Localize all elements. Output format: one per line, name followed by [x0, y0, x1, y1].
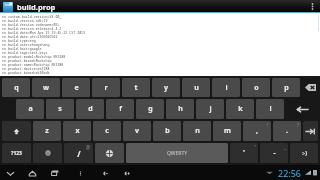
staticText: ro.product.name=Rockchip RK3188: [2, 62, 64, 66]
staticText: QWERTY: [167, 150, 188, 157]
staticText: build.prop: [17, 2, 56, 12]
button[interactable]: Enter: [286, 99, 318, 119]
staticText: o: [254, 83, 259, 93]
staticText: j: [209, 104, 212, 114]
button[interactable]: z: [33, 121, 61, 141]
button[interactable]: Delete: [302, 78, 318, 97]
staticText: z: [45, 126, 49, 136]
button[interactable]: Back: [4, 167, 16, 179]
button[interactable]: QWERTY: [126, 143, 228, 163]
staticText: ro.product.board=rk30sdk: [2, 70, 50, 74]
button[interactable]: :-): [290, 143, 318, 163]
button[interactable]: Home: [26, 167, 38, 179]
button[interactable]: k: [226, 99, 254, 119]
button[interactable]: l: [256, 99, 284, 119]
button[interactable]: d: [76, 99, 104, 119]
button[interactable]: g: [136, 99, 164, 119]
staticText: _: [284, 144, 286, 150]
staticText: :-): [302, 150, 307, 157]
button[interactable]: -: [260, 143, 288, 163]
button[interactable]: More options: [307, 0, 317, 13]
button[interactable]: Tab: [303, 121, 318, 141]
staticText: ,: [256, 126, 258, 136]
button[interactable]: m: [213, 121, 241, 141]
button[interactable]: x: [63, 121, 91, 141]
button[interactable]: Shift: [2, 121, 31, 141]
staticText: h: [178, 104, 183, 114]
staticText: ro.build.tags=test-keys: [2, 50, 48, 54]
button[interactable]: ,: [243, 121, 271, 141]
staticText: ": [254, 144, 256, 150]
button[interactable]: ': [230, 143, 258, 163]
staticText: ro.build.date=Mon Apr 15 19:45:22 CST 20…: [2, 30, 86, 34]
staticText: i: [225, 83, 228, 93]
button[interactable]: y: [152, 78, 180, 97]
button[interactable]: c: [93, 121, 121, 141]
staticText: y: [164, 83, 168, 93]
staticText: e: [74, 83, 79, 93]
staticText: ro.product.brand=Rockchip: [2, 58, 52, 62]
button[interactable]: n: [183, 121, 211, 141]
button[interactable]: f: [106, 99, 134, 119]
staticText: ?: [297, 122, 299, 128]
button[interactable]: Menu: [74, 167, 86, 179]
staticText: ro.build.version.sdk=19: [2, 18, 48, 22]
staticText: ro.build.host=google: [2, 46, 42, 50]
staticText: g: [148, 104, 153, 114]
button[interactable]: Recents: [48, 167, 60, 179]
button[interactable]: p: [272, 78, 300, 97]
staticText: /: [77, 148, 81, 159]
button[interactable]: u: [182, 78, 210, 97]
button[interactable]: /: [64, 143, 93, 163]
button[interactable]: ?123: [2, 143, 31, 163]
button[interactable]: v: [123, 121, 151, 141]
staticText: l: [269, 104, 272, 114]
button[interactable]: t: [122, 78, 150, 97]
staticText: !: [267, 122, 269, 128]
staticText: c: [105, 126, 109, 136]
staticText: ro.build.type=eng: [2, 38, 36, 42]
button[interactable]: o: [242, 78, 270, 97]
button[interactable]: App icon: [3, 2, 13, 12]
button[interactable]: r: [92, 78, 120, 97]
staticText: .: [286, 126, 288, 136]
staticText: r: [104, 83, 108, 93]
staticText: t: [134, 83, 138, 93]
button[interactable]: w: [32, 78, 60, 97]
button[interactable]: Settings: [33, 143, 62, 163]
staticText: ro.product.device=rk3188: [2, 66, 50, 70]
button[interactable]: b: [153, 121, 181, 141]
button[interactable]: i: [212, 78, 240, 97]
button[interactable]: j: [196, 99, 224, 119]
button[interactable]: e: [62, 78, 90, 97]
staticText: ?123: [11, 150, 22, 157]
staticText: k: [238, 104, 243, 114]
staticText: a: [28, 104, 33, 114]
button[interactable]: h: [166, 99, 194, 119]
button[interactable]: s: [46, 99, 74, 119]
staticText: s: [58, 104, 62, 114]
staticText: m: [224, 126, 231, 136]
staticText: p: [284, 83, 289, 93]
staticText: -: [273, 148, 276, 158]
staticText: u: [194, 83, 199, 93]
staticText: ro.build.version.codename=REL: [2, 22, 60, 26]
button[interactable]: Change language: [95, 143, 124, 163]
staticText: v: [135, 126, 139, 136]
staticText: d: [88, 104, 93, 114]
staticText: w: [43, 83, 49, 93]
button[interactable]: .: [273, 121, 301, 141]
staticText: ro.product.model=Rockchip RK3188: [2, 54, 66, 58]
button[interactable]: Wi-Fi: [264, 167, 275, 178]
staticText: ro.build.version.release=4.4.2: [2, 26, 62, 30]
button[interactable]: Volume down: [98, 167, 110, 179]
staticText: ro.build.user=zhangzhang: [2, 42, 50, 46]
staticText: n: [195, 126, 200, 136]
staticText: b: [165, 126, 170, 136]
staticText: q: [14, 83, 19, 93]
button[interactable]: a: [16, 99, 44, 119]
staticText: ro.custom.build.version=V4.00_: [2, 14, 62, 18]
button[interactable]: Volume up: [120, 167, 132, 179]
button[interactable]: q: [2, 78, 30, 97]
staticText: @: [86, 144, 91, 150]
